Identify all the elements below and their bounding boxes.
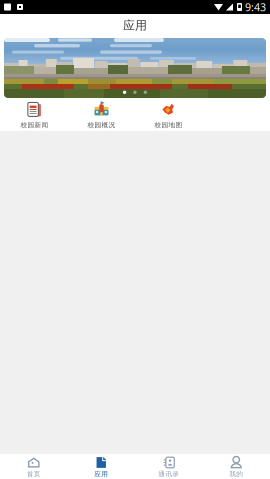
button[interactable]: 我的 <box>202 454 270 479</box>
staticText: 首页 <box>27 470 41 478</box>
staticText: 校园新闻 <box>20 121 48 129</box>
staticText: 我的 <box>229 470 243 478</box>
staticText: 应用 <box>94 470 108 478</box>
button[interactable]: 校园概况 <box>68 101 135 130</box>
staticText: 校园概况 <box>87 121 115 129</box>
staticText: 通讯录 <box>158 470 179 478</box>
staticText: 9:43 <box>245 0 266 14</box>
staticText: 应用 <box>123 18 147 33</box>
button[interactable]: 通讯录 <box>135 454 202 479</box>
button[interactable]: 首页 <box>0 454 67 479</box>
button[interactable]: 校园地图 <box>135 101 202 130</box>
button[interactable]: 应用 <box>67 454 135 479</box>
staticText: 校园地图 <box>154 121 182 129</box>
button[interactable]: 校园新闻 <box>1 101 68 130</box>
